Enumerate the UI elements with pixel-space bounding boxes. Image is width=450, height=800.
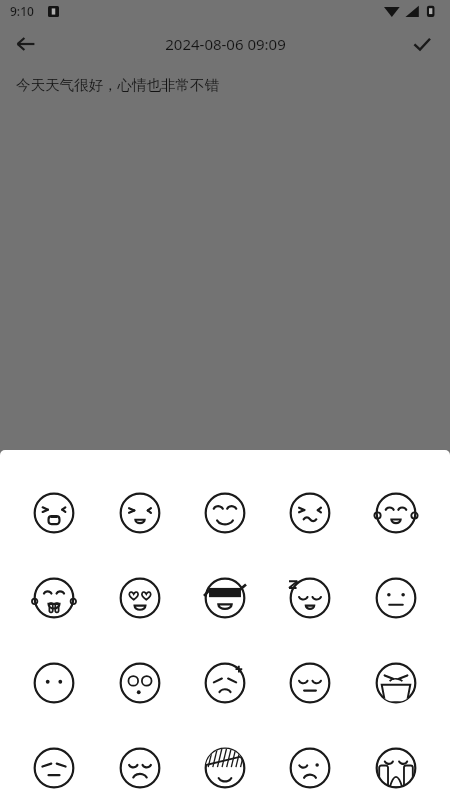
button[interactable]: Emoji 6 [109,567,171,629]
button[interactable]: Emoji 1 [109,482,171,544]
button[interactable]: Emoji 9 [365,567,427,629]
button[interactable]: Emoji 5 [23,567,85,629]
button[interactable]: Emoji 12 [194,652,256,714]
button[interactable]: Emoji 17 [194,737,256,799]
button[interactable]: Emoji 11 [109,652,171,714]
button[interactable]: Emoji 19 [365,737,427,799]
button[interactable]: Save [402,24,442,64]
button[interactable]: Emoji 8 [279,567,341,629]
button[interactable]: Emoji 2 [194,482,256,544]
button[interactable]: Emoji 3 [279,482,341,544]
button[interactable]: Emoji 16 [109,737,171,799]
button[interactable]: Emoji 7 [194,567,256,629]
button[interactable]: Emoji 13 [279,652,341,714]
button[interactable]: Back [6,24,46,64]
staticText: 9:10 [10,3,34,19]
button[interactable]: Emoji 15 [23,737,85,799]
button[interactable]: Emoji 4 [365,482,427,544]
staticText: 今天天气很好，心情也非常不错 [16,76,219,94]
staticText: 2024-08-06 09:09 [165,34,286,54]
button[interactable]: Emoji 14 [365,652,427,714]
button[interactable]: Emoji 0 [23,482,85,544]
button[interactable]: Emoji 10 [23,652,85,714]
button[interactable]: Emoji 18 [279,737,341,799]
